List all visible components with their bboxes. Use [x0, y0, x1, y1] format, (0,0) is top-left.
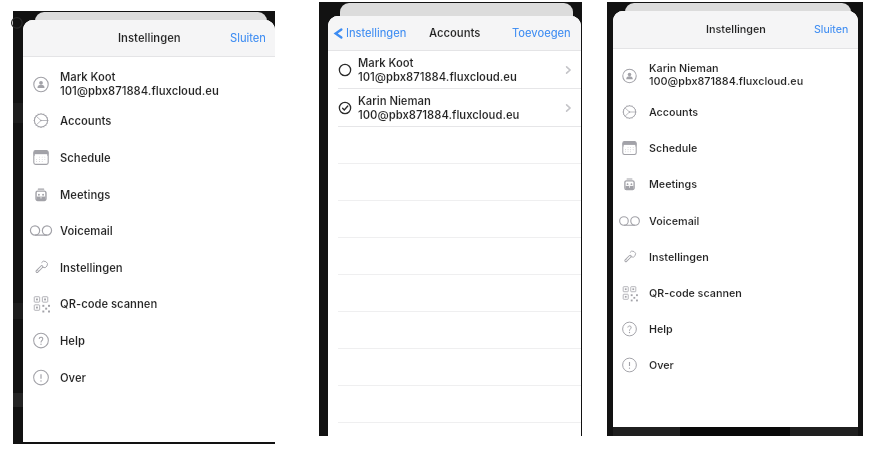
button[interactable]: Instellingen: [328, 21, 415, 45]
staticText: Over: [649, 359, 674, 372]
staticText: Mark Koot: [60, 70, 116, 84]
button[interactable]: Mark Koot: [328, 51, 581, 89]
staticText: QR-code scannen: [649, 287, 742, 300]
staticText: 101@pbx871884.fluxcloud.eu: [60, 84, 219, 98]
staticText: Voicemail: [60, 224, 113, 238]
button[interactable]: Sluiten: [221, 25, 275, 51]
staticText: Sluiten: [814, 23, 849, 36]
staticText: Instellingen: [649, 251, 709, 264]
button[interactable]: Toevoegen: [502, 20, 581, 46]
staticText: Instellingen: [346, 26, 407, 40]
staticText: Accounts: [649, 106, 699, 119]
staticText: 101@pbx871884.fluxcloud.eu: [358, 70, 517, 84]
staticText: Meetings: [649, 178, 698, 191]
staticText: Accounts: [60, 114, 112, 128]
button[interactable]: Meetings: [613, 166, 858, 202]
staticText: QR-code scannen: [60, 297, 158, 311]
staticText: Toevoegen: [512, 26, 571, 40]
button[interactable]: Help: [613, 311, 858, 347]
button[interactable]: Meetings: [23, 176, 275, 213]
staticText: Mark Koot: [358, 56, 414, 70]
button[interactable]: QR-code scannen: [23, 285, 275, 322]
button[interactable]: Schedule: [23, 139, 275, 176]
button[interactable]: Help: [23, 322, 275, 359]
button[interactable]: Instellingen: [23, 249, 275, 286]
staticText: Over: [60, 371, 87, 385]
button[interactable]: [23, 57, 275, 107]
staticText: Karin Nieman: [358, 94, 431, 108]
staticText: Help: [60, 334, 85, 348]
staticText: Help: [649, 323, 673, 336]
staticText: 100@pbx871884.fluxcloud.eu: [649, 75, 804, 88]
staticText: Schedule: [649, 142, 698, 155]
staticText: Meetings: [60, 188, 111, 202]
button[interactable]: Schedule: [613, 130, 858, 166]
button[interactable]: Voicemail: [23, 212, 275, 249]
staticText: Instellingen: [118, 31, 181, 45]
staticText: Voicemail: [649, 215, 700, 228]
button[interactable]: Sluiten: [805, 17, 858, 42]
button[interactable]: Over: [23, 359, 275, 396]
staticText: Schedule: [60, 151, 111, 165]
staticText: Instellingen: [60, 261, 123, 275]
staticText: Sluiten: [230, 31, 266, 45]
staticText: Instellingen: [706, 23, 766, 36]
button[interactable]: [613, 49, 858, 99]
button[interactable]: Instellingen: [613, 239, 858, 275]
button[interactable]: Voicemail: [613, 203, 858, 239]
staticText: Accounts: [429, 26, 481, 40]
staticText: 100@pbx871884.fluxcloud.eu: [358, 108, 520, 122]
button[interactable]: Over: [613, 347, 858, 383]
button[interactable]: QR-code scannen: [613, 275, 858, 311]
button[interactable]: Karin Nieman: [328, 89, 581, 127]
button[interactable]: Accounts: [613, 94, 858, 130]
button[interactable]: Accounts: [23, 102, 275, 139]
staticText: Karin Nieman: [649, 62, 719, 75]
